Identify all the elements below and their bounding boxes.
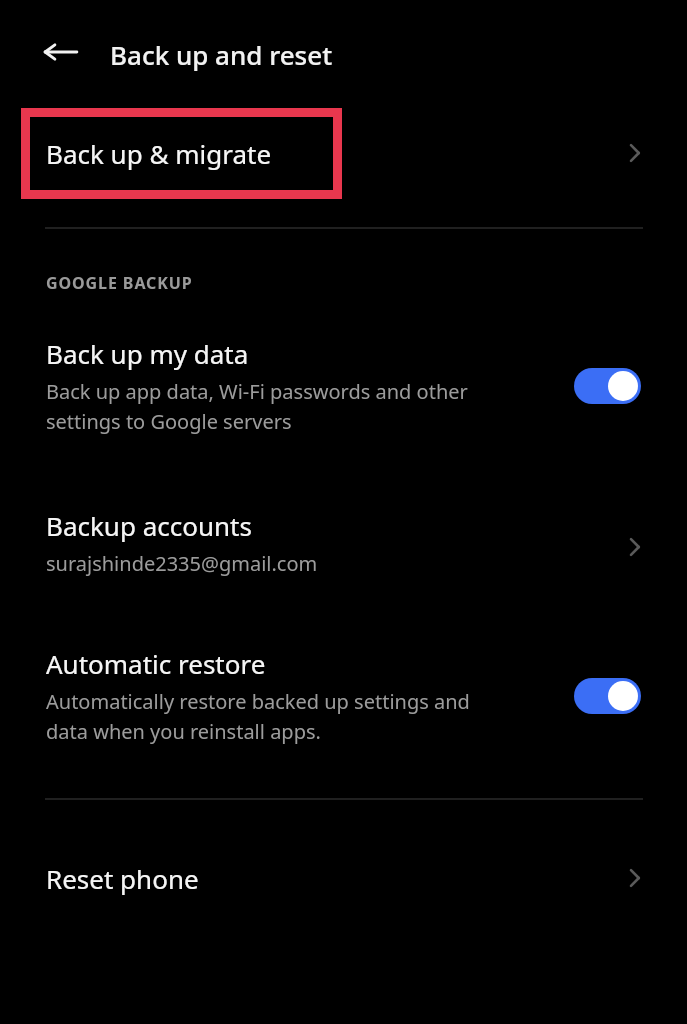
staticText: Back up my data	[46, 336, 249, 371]
button[interactable]: Reset phone	[0, 841, 687, 915]
button[interactable]: Back up my data	[0, 322, 687, 458]
button[interactable]: Automatic restore	[0, 632, 687, 768]
button[interactable]: Back up my data	[574, 368, 641, 404]
staticText: Reset phone	[46, 861, 199, 896]
staticText: Automatically restore backed up settings…	[46, 688, 470, 745]
staticText: Backup accounts	[46, 508, 252, 543]
staticText: Back up & migrate	[46, 136, 272, 171]
button[interactable]: Back up & migrate	[0, 116, 687, 190]
staticText: surajshinde2335@gmail.com	[46, 550, 318, 577]
button[interactable]: Automatic restore	[574, 678, 641, 714]
button[interactable]: Backup accounts	[0, 492, 687, 597]
staticText: Back up app data, Wi-Fi passwords and ot…	[46, 378, 468, 435]
staticText: Automatic restore	[46, 646, 266, 681]
button[interactable]: Back	[43, 34, 79, 70]
staticText: Back up and reset	[110, 37, 333, 72]
staticText: GOOGLE BACKUP	[46, 272, 193, 294]
